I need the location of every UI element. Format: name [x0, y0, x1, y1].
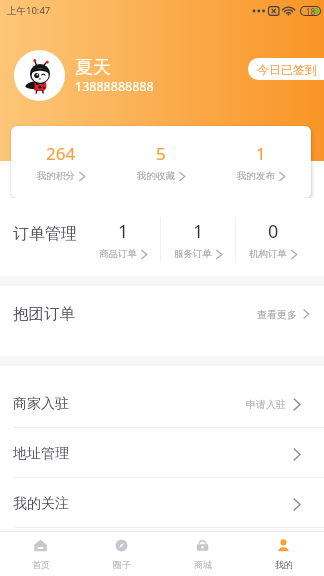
button[interactable]: 商城: [162, 532, 243, 576]
button[interactable]: 商家入驻: [0, 378, 324, 428]
button[interactable]: 圈子: [81, 532, 162, 576]
staticText: 0: [268, 219, 279, 244]
staticText: 服务订单: [174, 248, 212, 260]
button[interactable]: 5: [111, 126, 211, 198]
staticText: 订单管理: [13, 224, 77, 244]
staticText: 13888888888: [75, 78, 154, 95]
staticText: 264: [46, 142, 76, 165]
staticText: 我的: [275, 559, 293, 570]
staticText: 商城: [194, 559, 212, 570]
staticText: 18: [306, 6, 316, 17]
staticText: 商品订单: [99, 248, 137, 260]
staticText: 我的积分: [37, 170, 75, 182]
staticText: 地址管理: [13, 445, 69, 463]
staticText: 申请入驻: [246, 398, 286, 411]
staticText: 5: [156, 142, 166, 165]
staticText: 商家入驻: [13, 395, 69, 413]
staticText: 今日已签到: [257, 62, 317, 77]
button[interactable]: 我的关注: [0, 478, 324, 528]
button[interactable]: 抱团订单: [0, 286, 324, 342]
button[interactable]: 1: [211, 126, 311, 198]
staticText: 我的关注: [13, 495, 69, 513]
staticText: 我的发布: [237, 170, 275, 182]
staticText: 1: [256, 142, 266, 165]
staticText: 1: [118, 219, 129, 244]
staticText: 首页: [32, 559, 50, 570]
staticText: 抱团订单: [13, 304, 75, 324]
staticText: 查看更多: [257, 308, 297, 321]
button[interactable]: 地址管理: [0, 428, 324, 478]
button[interactable]: 今日已签到: [248, 58, 324, 80]
staticText: 上午10:47: [7, 4, 51, 17]
button[interactable]: 首页: [0, 532, 81, 576]
staticText: 我的收藏: [137, 170, 175, 182]
staticText: 1: [193, 219, 204, 244]
staticText: 圈子: [113, 559, 131, 570]
staticText: 机构订单: [249, 248, 287, 260]
button[interactable]: 1: [161, 202, 235, 276]
button[interactable]: 我的: [243, 532, 324, 576]
staticText: 夏天: [75, 56, 111, 79]
button[interactable]: 0: [236, 202, 310, 276]
button[interactable]: 1: [86, 202, 160, 276]
button[interactable]: 264: [11, 126, 111, 198]
